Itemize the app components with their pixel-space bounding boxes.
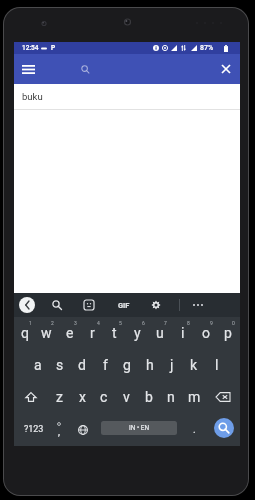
button[interactable]: Stickers — [75, 293, 103, 317]
button[interactable]: Space — [101, 421, 177, 435]
staticText: u — [156, 325, 164, 341]
button[interactable]: q — [13, 317, 36, 349]
button[interactable]: Shift — [17, 381, 45, 413]
staticText: . — [193, 424, 196, 436]
staticText: 12:54 — [22, 44, 39, 52]
staticText: 87% — [200, 44, 214, 52]
button[interactable]: Symbols — [18, 413, 50, 446]
staticText: , — [58, 426, 60, 438]
staticText: h — [146, 357, 154, 373]
staticText: j — [170, 357, 174, 373]
staticText: v — [123, 389, 130, 405]
button[interactable]: y — [126, 317, 149, 349]
staticText: i — [181, 325, 185, 341]
button[interactable]: Settings — [142, 293, 170, 317]
staticText: n — [167, 389, 175, 405]
staticText: y — [134, 325, 141, 341]
button[interactable]: m — [183, 381, 205, 413]
button[interactable]: h — [139, 349, 161, 381]
button[interactable]: Period — [182, 413, 206, 446]
button[interactable]: Search — [43, 293, 71, 317]
staticText: o — [202, 325, 210, 341]
button[interactable]: Open navigation menu — [16, 54, 40, 84]
button[interactable]: GIF — [110, 293, 138, 317]
button[interactable]: a — [27, 349, 49, 381]
button[interactable]: Comma — [47, 413, 71, 446]
button[interactable]: o — [194, 317, 217, 349]
button[interactable]: k — [183, 349, 205, 381]
button[interactable]: v — [115, 381, 137, 413]
staticText: s — [56, 357, 64, 373]
button[interactable]: x — [71, 381, 93, 413]
button[interactable]: Change language — [71, 413, 95, 446]
staticText: b — [145, 389, 153, 405]
staticText: 8 — [187, 320, 190, 326]
button[interactable]: f — [94, 349, 116, 381]
button[interactable]: p — [216, 317, 239, 349]
staticText: z — [56, 389, 63, 405]
staticText: GIF — [118, 301, 130, 310]
staticText: ?123 — [24, 424, 44, 435]
button[interactable]: j — [161, 349, 183, 381]
button[interactable]: buku — [14, 84, 240, 110]
button[interactable]: i — [171, 317, 194, 349]
staticText: f — [103, 357, 108, 373]
staticText: e — [66, 325, 74, 341]
staticText: k — [190, 357, 198, 373]
button[interactable]: s — [49, 349, 71, 381]
staticText: x — [79, 389, 86, 405]
button[interactable]: w — [35, 317, 58, 349]
button[interactable]: c — [93, 381, 115, 413]
staticText: 1 — [29, 320, 32, 326]
button[interactable]: r — [81, 317, 104, 349]
staticText: 5 — [119, 320, 122, 326]
button[interactable]: Close search — [213, 54, 239, 84]
staticText: 6 — [142, 320, 145, 326]
staticText: P — [51, 44, 56, 52]
button[interactable]: u — [148, 317, 171, 349]
staticText: 4 — [97, 320, 100, 326]
staticText: r — [90, 325, 95, 341]
staticText: 9 — [210, 320, 213, 326]
staticText: d — [78, 357, 86, 373]
button[interactable]: n — [160, 381, 182, 413]
staticText: a — [34, 357, 42, 373]
button[interactable]: g — [116, 349, 138, 381]
staticText: t — [112, 325, 117, 341]
staticText: 3 — [74, 320, 77, 326]
staticText: c — [100, 389, 108, 405]
staticText: m — [188, 389, 201, 405]
staticText: buku — [22, 91, 43, 102]
button[interactable]: l — [206, 349, 228, 381]
button[interactable]: More options — [184, 293, 212, 317]
button[interactable]: Search — [214, 418, 234, 438]
button[interactable]: t — [103, 317, 126, 349]
staticText: q — [21, 325, 29, 341]
staticText: 0 — [232, 320, 235, 326]
button[interactable]: e — [58, 317, 81, 349]
staticText: w — [41, 325, 52, 341]
staticText: IN • EN — [129, 424, 150, 432]
staticText: p — [224, 325, 232, 341]
button[interactable]: Back — [13, 293, 41, 317]
staticText: g — [123, 357, 131, 373]
staticText: 2 — [51, 320, 54, 326]
staticText: 7 — [164, 320, 167, 326]
staticText: l — [215, 357, 219, 373]
button[interactable]: z — [48, 381, 70, 413]
button[interactable]: b — [138, 381, 160, 413]
button[interactable]: Backspace — [209, 381, 237, 413]
button[interactable]: d — [71, 349, 93, 381]
